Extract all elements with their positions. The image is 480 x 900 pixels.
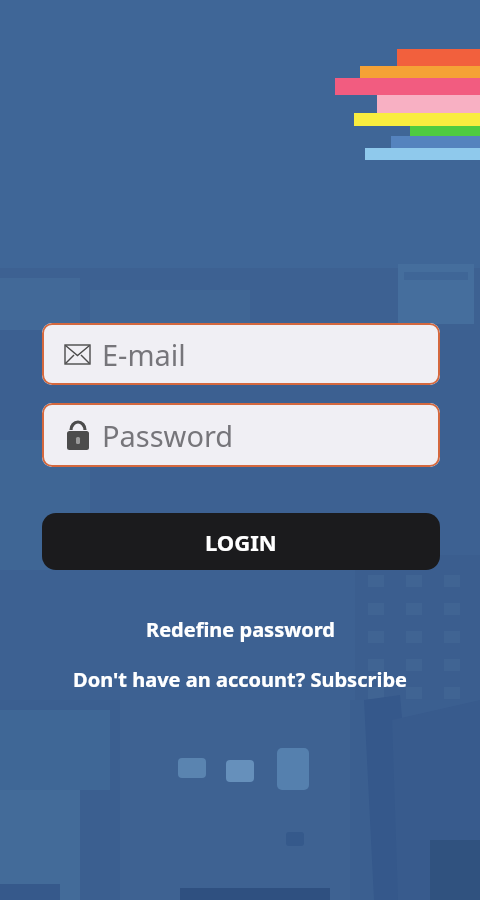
staticText: LOGIN: [205, 527, 277, 557]
staticText: Redefine password: [146, 616, 335, 642]
button[interactable]: Don't have an account? Subscribe: [0, 665, 480, 693]
button[interactable]: LOGIN: [42, 513, 440, 570]
button[interactable]: Password: [42, 403, 440, 467]
staticText: Password: [102, 416, 234, 455]
button[interactable]: Redefine password: [0, 616, 480, 642]
button[interactable]: E-mail: [42, 323, 440, 385]
staticText: Don't have an account? Subscribe: [73, 666, 407, 693]
staticText: E-mail: [102, 335, 186, 374]
